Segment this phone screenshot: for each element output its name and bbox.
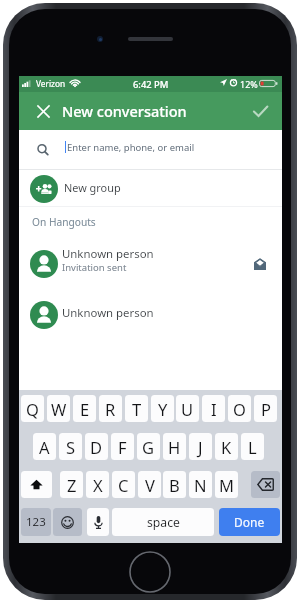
- staticText: K: [221, 436, 232, 458]
- button[interactable]: U: [176, 395, 199, 422]
- button[interactable]: Close: [28, 96, 58, 126]
- button[interactable]: Q: [21, 395, 44, 422]
- button[interactable]: Shift: [21, 471, 52, 498]
- button[interactable]: W: [47, 395, 70, 422]
- button[interactable]: L: [241, 433, 264, 460]
- button[interactable]: K: [215, 433, 238, 460]
- button[interactable]: Emoji: [53, 508, 82, 536]
- button[interactable]: Enter name, phone, or email: [19, 130, 282, 169]
- staticText: M: [219, 474, 234, 496]
- staticText: P: [261, 398, 271, 420]
- button[interactable]: V: [138, 471, 161, 498]
- staticText: Unknown person: [62, 305, 154, 321]
- staticText: V: [145, 474, 155, 496]
- staticText: On Hangouts: [32, 215, 96, 229]
- button[interactable]: 123: [21, 508, 51, 536]
- staticText: Done: [234, 514, 265, 530]
- staticText: U: [181, 398, 194, 420]
- button[interactable]: M: [215, 471, 238, 498]
- button[interactable]: Z: [60, 471, 83, 498]
- button[interactable]: Y: [151, 395, 174, 422]
- button[interactable]: Unknown person: [19, 290, 282, 340]
- staticText: Q: [26, 398, 39, 420]
- staticText: 123: [26, 514, 46, 530]
- button[interactable]: Send invitation: [243, 239, 277, 289]
- button[interactable]: Backspace: [251, 471, 280, 498]
- button[interactable]: Voice input: [87, 508, 109, 536]
- staticText: A: [39, 436, 50, 458]
- button[interactable]: P: [254, 395, 277, 422]
- staticText: E: [80, 398, 90, 420]
- staticText: Y: [158, 398, 168, 420]
- staticText: I: [211, 398, 217, 420]
- staticText: S: [66, 436, 76, 458]
- button[interactable]: C: [112, 471, 135, 498]
- button[interactable]: D: [85, 433, 108, 460]
- staticText: Enter name, phone, or email: [67, 141, 195, 154]
- button[interactable]: I: [202, 395, 225, 422]
- staticText: Z: [67, 474, 77, 496]
- button[interactable]: O: [228, 395, 251, 422]
- button[interactable]: N: [189, 471, 212, 498]
- button[interactable]: J: [189, 433, 212, 460]
- staticText: D: [90, 436, 103, 458]
- button[interactable]: G: [137, 433, 160, 460]
- button[interactable]: New group: [19, 170, 282, 206]
- staticText: W: [51, 398, 67, 420]
- button[interactable]: Done: [245, 96, 275, 126]
- staticText: Verizon: [36, 78, 66, 89]
- button[interactable]: H: [163, 433, 186, 460]
- staticText: space: [147, 514, 180, 531]
- button[interactable]: B: [163, 471, 186, 498]
- button[interactable]: R: [99, 395, 122, 422]
- staticText: X: [93, 474, 103, 496]
- staticText: J: [198, 436, 203, 458]
- staticText: B: [169, 474, 180, 496]
- staticText: N: [194, 474, 207, 496]
- staticText: New conversation: [62, 101, 187, 121]
- button[interactable]: F: [111, 433, 134, 460]
- staticText: H: [168, 436, 181, 458]
- button[interactable]: X: [86, 471, 109, 498]
- button[interactable]: T: [125, 395, 148, 422]
- button[interactable]: Unknown person: [19, 239, 282, 289]
- staticText: Unknown person: [62, 246, 154, 262]
- staticText: F: [118, 436, 127, 458]
- button[interactable]: space: [112, 508, 214, 536]
- staticText: G: [142, 436, 155, 458]
- button[interactable]: S: [59, 433, 82, 460]
- button[interactable]: Done: [219, 508, 280, 536]
- staticText: R: [105, 398, 116, 420]
- staticText: C: [118, 474, 129, 496]
- button[interactable]: E: [73, 395, 96, 422]
- staticText: New group: [64, 180, 121, 195]
- staticText: 6:42 PM: [133, 78, 169, 91]
- staticText: Invitation sent: [62, 261, 127, 274]
- staticText: L: [248, 436, 257, 458]
- staticText: 12%: [240, 78, 258, 90]
- staticText: O: [233, 398, 246, 420]
- staticText: T: [132, 398, 142, 420]
- button[interactable]: A: [33, 433, 56, 460]
